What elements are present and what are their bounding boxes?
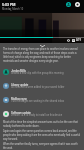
staticText: 4:19	[76, 39, 82, 42]
staticText: Monday, March 10	[2, 8, 24, 11]
button[interactable]: Library update	[0, 79, 84, 93]
staticText: Version 14.2 is ready to install on this…	[11, 114, 63, 117]
staticText: When the weather finally turns, everyone…	[3, 143, 81, 150]
button[interactable]: Show more	[40, 45, 45, 47]
button[interactable]: Settings	[75, 2, 80, 7]
button[interactable]: Software update	[0, 107, 84, 121]
staticText: Software update	[11, 111, 31, 114]
button[interactable]: Mailbox sync	[0, 93, 84, 107]
staticText: The transfer of energy from one place to…	[3, 48, 81, 62]
staticText: Most of the time the simplest answer tur…	[3, 121, 81, 128]
button[interactable]: Account	[66, 2, 71, 7]
staticText: Again and again the same question comes …	[3, 130, 81, 141]
staticText: Library update	[11, 83, 29, 86]
button[interactable]: Subtitles	[72, 39, 75, 42]
staticText: Two messages are waiting in the shared i…	[11, 100, 65, 103]
staticText: Jordan Mills	[11, 69, 26, 72]
staticText: 5:03 PM	[2, 3, 16, 7]
button[interactable]: Jordan Mills	[0, 65, 84, 79]
staticText: Mailbox sync	[11, 97, 27, 100]
button[interactable]: Player settings	[67, 39, 70, 42]
staticText: Shared a new clip with the group this mo…	[11, 72, 64, 75]
staticText: Six new items were added to your saved f…	[11, 86, 65, 89]
